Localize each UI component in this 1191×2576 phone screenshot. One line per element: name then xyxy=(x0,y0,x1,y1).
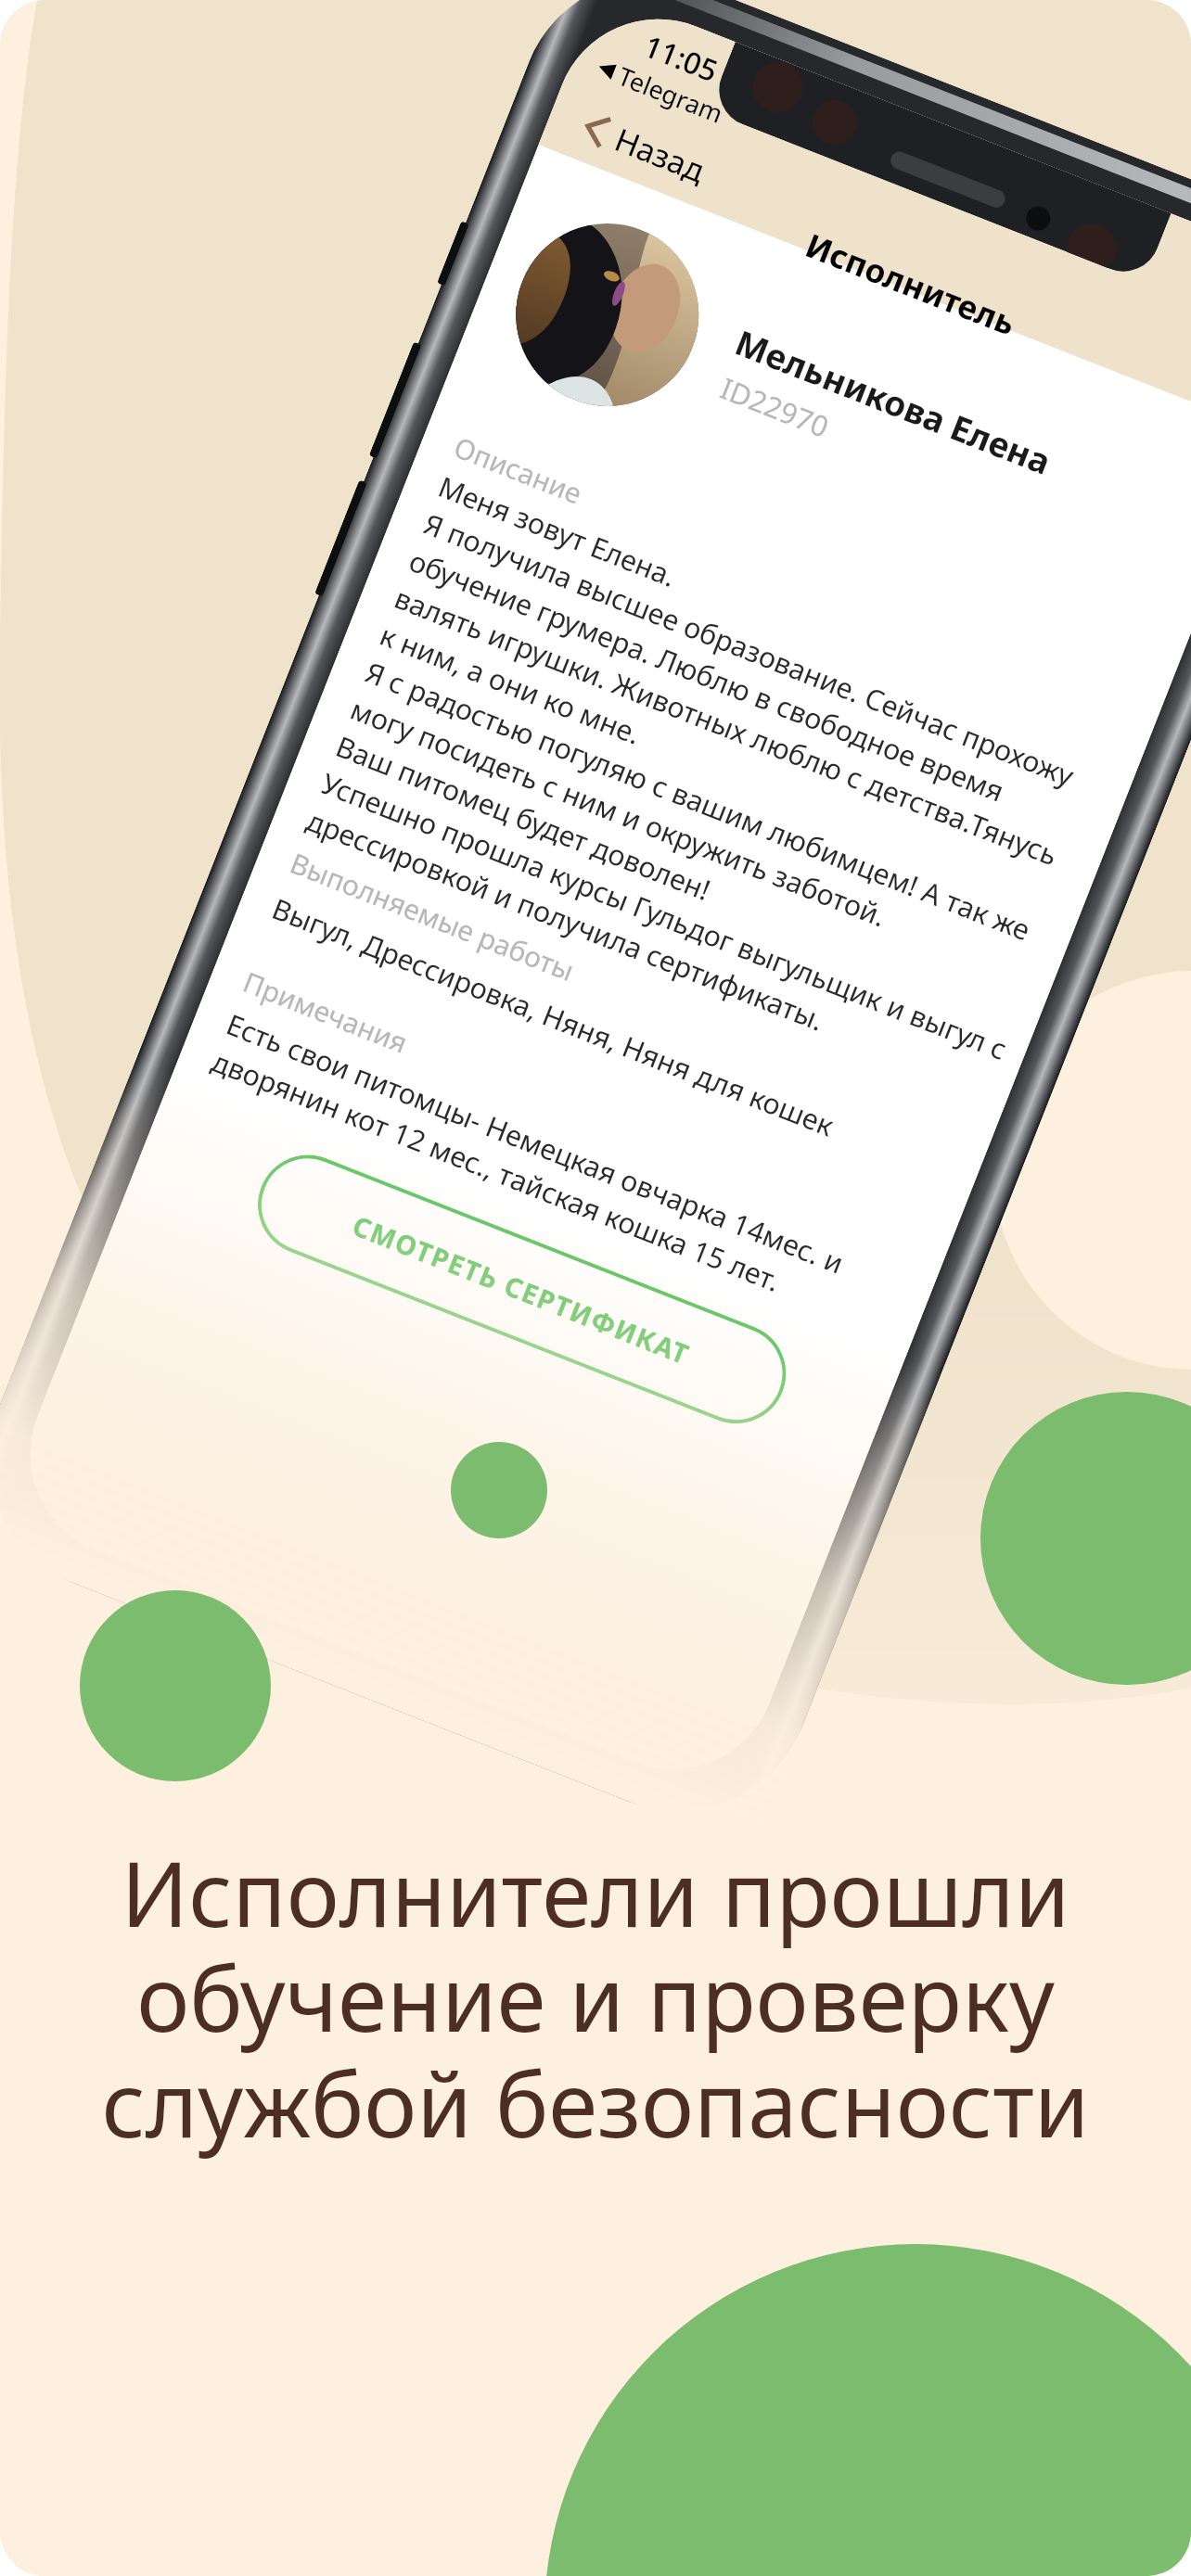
staticText: Выгул, Дрессировка, Няня, Няня для кошек xyxy=(267,888,978,1199)
staticText: Мельникова Елена xyxy=(729,318,1058,484)
button[interactable]: СМОТРЕТЬ СЕРТИФИКАТ xyxy=(243,1140,801,1438)
staticText: 11:05 xyxy=(638,25,724,91)
staticText: Выполняемые работы xyxy=(285,844,580,990)
staticText: Исполнитель xyxy=(799,223,1023,346)
staticText: Исполнители прошли обучение и проверку с… xyxy=(0,1831,1191,2164)
staticText: Telegram xyxy=(613,59,729,131)
staticText: Примечания xyxy=(238,963,413,1062)
button[interactable]: Назад xyxy=(566,98,717,197)
staticText: СМОТРЕТЬ СЕРТИФИКАТ xyxy=(348,1207,696,1372)
staticText: Назад xyxy=(609,118,712,192)
staticText: Описание xyxy=(449,428,588,512)
staticText: Есть свои питомцы- Немецкая овчарка 14ме… xyxy=(207,1004,933,1352)
staticText: Меня зовут Елена. Я получила высшее обра… xyxy=(301,467,1145,1111)
staticText: ID22970 xyxy=(715,368,835,446)
